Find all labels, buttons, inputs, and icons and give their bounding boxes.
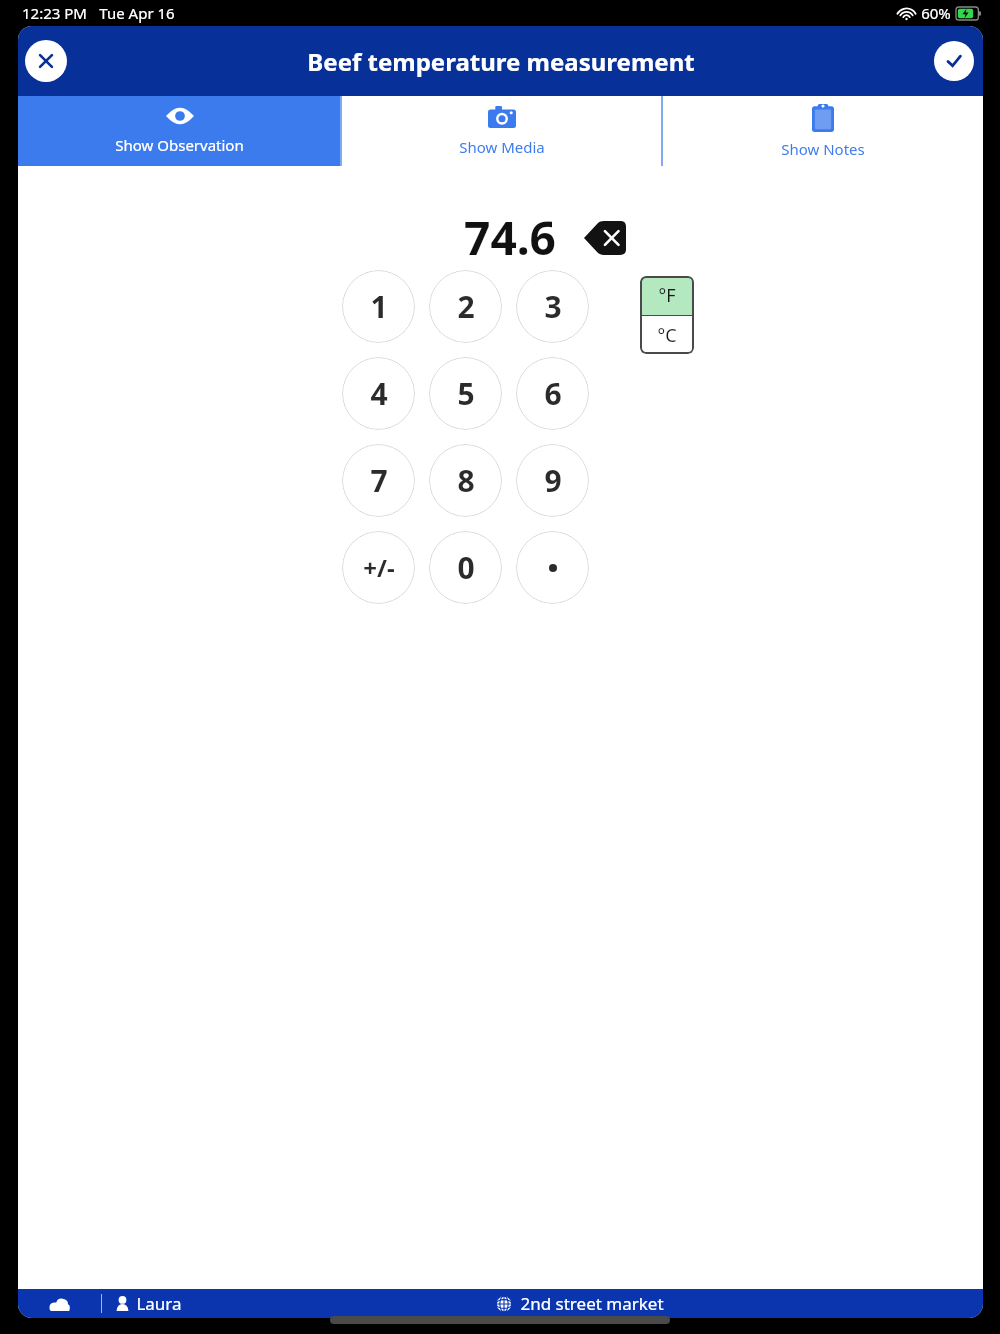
staticText: 4 xyxy=(370,373,388,414)
button[interactable]: Close xyxy=(25,40,67,82)
button[interactable]: Backspace xyxy=(584,221,626,255)
staticText: 9 xyxy=(544,460,562,501)
staticText: °F xyxy=(658,283,676,308)
staticText: Show Observation xyxy=(115,135,244,155)
staticText: °C xyxy=(657,323,677,348)
button[interactable]: Show Media xyxy=(342,96,661,166)
button[interactable]: Laura xyxy=(116,1292,182,1315)
staticText: Tue Apr 16 xyxy=(99,3,175,23)
staticText: Beef temperature measurement xyxy=(307,45,695,78)
button[interactable]: °F xyxy=(640,276,694,315)
staticText: 3 xyxy=(544,286,562,327)
button[interactable]: 3 xyxy=(516,270,589,343)
staticText: 12:23 PM xyxy=(22,3,87,23)
button[interactable]: 1 xyxy=(342,270,415,343)
button[interactable]: 0 xyxy=(429,531,502,604)
staticText: 2 xyxy=(457,286,475,327)
button[interactable]: 9 xyxy=(516,444,589,517)
button[interactable]: °C xyxy=(640,316,694,354)
button[interactable]: Show Notes xyxy=(663,96,983,166)
button[interactable]: 4 xyxy=(342,357,415,430)
staticText: Laura xyxy=(136,1292,182,1315)
button[interactable]: 8 xyxy=(429,444,502,517)
button[interactable]: 2 xyxy=(429,270,502,343)
staticText: Show Media xyxy=(459,137,545,157)
button[interactable]: Show Observation xyxy=(18,96,340,166)
staticText: 5 xyxy=(457,373,475,414)
staticText: 7 xyxy=(370,460,388,501)
staticText: +/- xyxy=(363,551,395,584)
staticText: 60% xyxy=(921,3,951,23)
button[interactable]: 7 xyxy=(342,444,415,517)
button[interactable]: Sync xyxy=(18,1289,101,1318)
staticText: 1 xyxy=(370,286,388,327)
button[interactable] xyxy=(516,531,589,604)
staticText: 2nd street market xyxy=(520,1292,664,1315)
staticText: 8 xyxy=(457,460,475,501)
staticText: Show Notes xyxy=(781,139,865,159)
staticText: 0 xyxy=(457,547,475,588)
staticText: 74.6 xyxy=(464,206,556,269)
button[interactable]: 2nd street market xyxy=(496,1292,664,1315)
button[interactable]: Save xyxy=(934,41,974,81)
staticText: 6 xyxy=(544,373,562,414)
button[interactable]: 6 xyxy=(516,357,589,430)
button[interactable]: 5 xyxy=(429,357,502,430)
button[interactable]: +/- xyxy=(342,531,415,604)
